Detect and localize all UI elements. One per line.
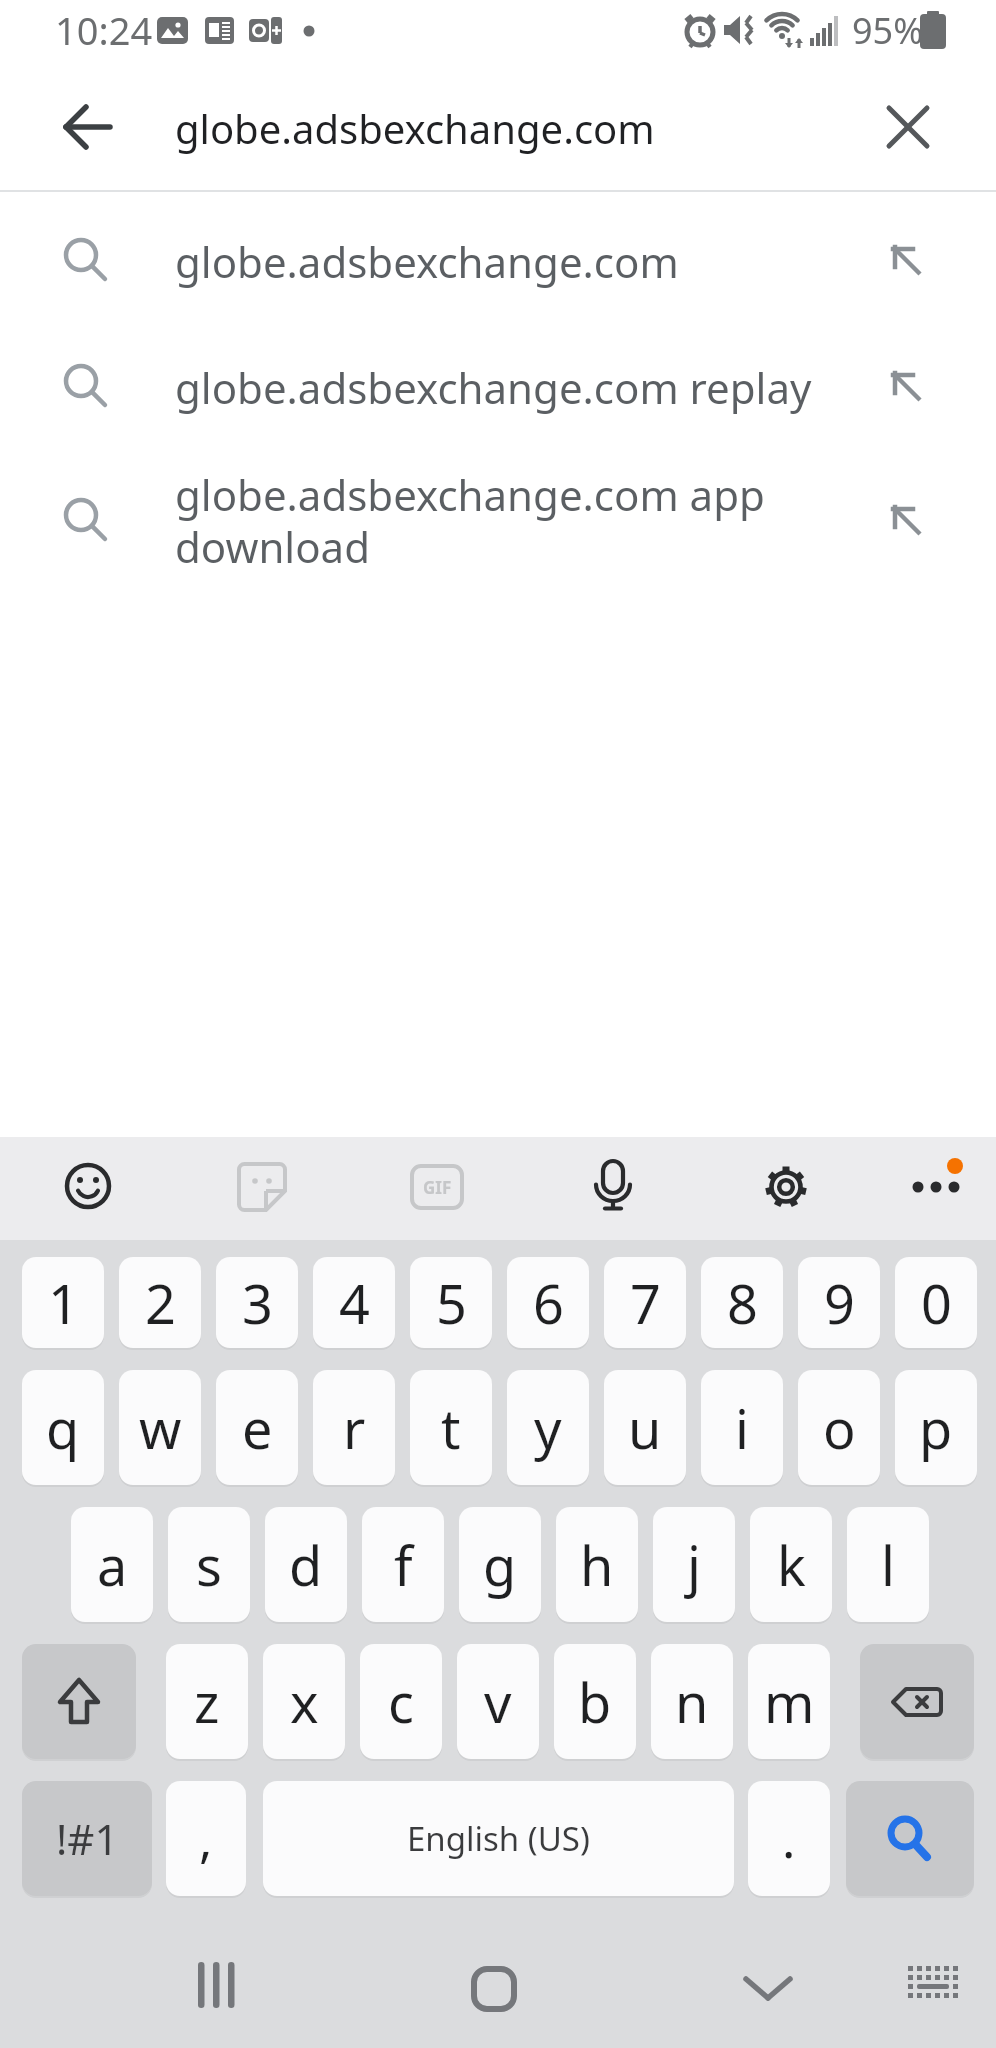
staticText: u xyxy=(628,1391,662,1465)
staticText: g xyxy=(483,1528,517,1602)
staticText: p xyxy=(919,1391,953,1465)
staticText: globe.adsbexchange.com xyxy=(175,233,679,290)
staticText: w xyxy=(139,1391,182,1465)
button[interactable] xyxy=(860,1644,974,1759)
button[interactable] xyxy=(583,1155,643,1215)
staticText: globe.adsbexchange.com replay xyxy=(175,359,812,416)
staticText: t xyxy=(441,1391,461,1465)
button[interactable] xyxy=(188,1956,248,2016)
button[interactable]: i xyxy=(701,1370,783,1485)
button[interactable]: x xyxy=(263,1644,345,1759)
button[interactable]: p xyxy=(895,1370,977,1485)
button[interactable]: z xyxy=(166,1644,248,1759)
button[interactable]: l xyxy=(847,1507,929,1622)
button[interactable]: g xyxy=(459,1507,541,1622)
button[interactable]: w xyxy=(119,1370,201,1485)
button[interactable]: a xyxy=(71,1507,153,1622)
button[interactable] xyxy=(897,1157,977,1217)
button[interactable]: d xyxy=(265,1507,347,1622)
button[interactable]: o xyxy=(798,1370,880,1485)
button[interactable]: 8 xyxy=(701,1257,783,1348)
button[interactable]: , xyxy=(166,1781,246,1896)
staticText: 9 xyxy=(824,1266,855,1340)
button[interactable] xyxy=(22,1644,136,1759)
button[interactable]: 4 xyxy=(313,1257,395,1348)
staticText: r xyxy=(343,1391,366,1465)
staticText: v xyxy=(484,1665,512,1739)
button[interactable]: m xyxy=(748,1644,830,1759)
staticText: 3 xyxy=(242,1266,273,1340)
button[interactable]: GIF xyxy=(407,1157,467,1217)
staticText: h xyxy=(580,1528,614,1602)
button[interactable] xyxy=(846,1781,974,1896)
staticText: k xyxy=(777,1528,806,1602)
staticText: c xyxy=(388,1665,414,1739)
button[interactable]: !#1 xyxy=(22,1781,152,1896)
staticText: d xyxy=(289,1528,323,1602)
button[interactable]: h xyxy=(556,1507,638,1622)
staticText: , xyxy=(199,1805,213,1873)
button[interactable]: f xyxy=(362,1507,444,1622)
button[interactable] xyxy=(57,1156,117,1216)
button[interactable]: q xyxy=(22,1370,104,1485)
staticText: b xyxy=(578,1665,612,1739)
button[interactable]: r xyxy=(313,1370,395,1485)
staticText: a xyxy=(97,1528,128,1602)
staticText: m xyxy=(764,1665,815,1739)
staticText: o xyxy=(823,1391,856,1465)
staticText: 4 xyxy=(339,1266,370,1340)
button[interactable]: 2 xyxy=(119,1257,201,1348)
button[interactable]: 0 xyxy=(895,1257,977,1348)
button[interactable]: j xyxy=(653,1507,735,1622)
staticText: English (US) xyxy=(407,1816,590,1861)
button[interactable]: s xyxy=(168,1507,250,1622)
button[interactable] xyxy=(0,440,996,600)
button[interactable]: n xyxy=(651,1644,733,1759)
staticText: s xyxy=(196,1528,222,1602)
staticText: f xyxy=(394,1528,413,1602)
button[interactable] xyxy=(464,1958,524,2018)
button[interactable] xyxy=(878,97,938,157)
button[interactable]: y xyxy=(507,1370,589,1485)
staticText: q xyxy=(46,1391,80,1465)
staticText: 0 xyxy=(921,1266,952,1340)
button[interactable]: 9 xyxy=(798,1257,880,1348)
button[interactable] xyxy=(903,1960,963,2010)
button[interactable]: 7 xyxy=(604,1257,686,1348)
staticText: z xyxy=(194,1665,220,1739)
staticText: 6 xyxy=(533,1266,564,1340)
button[interactable]: u xyxy=(604,1370,686,1485)
staticText: 7 xyxy=(630,1266,661,1340)
staticText: y xyxy=(534,1391,562,1465)
button[interactable]: e xyxy=(216,1370,298,1485)
button[interactable] xyxy=(756,1157,816,1217)
staticText: 10:24 xyxy=(55,4,153,56)
staticText: 8 xyxy=(727,1266,758,1340)
staticText: e xyxy=(242,1391,273,1465)
staticText: globe.adsbexchange.com app xyxy=(175,466,765,523)
button[interactable] xyxy=(0,206,996,316)
button[interactable] xyxy=(56,95,120,159)
button[interactable]: c xyxy=(360,1644,442,1759)
staticText: 95% xyxy=(852,6,924,55)
staticText: GIF xyxy=(423,1176,452,1199)
staticText: n xyxy=(675,1665,709,1739)
button[interactable]: 5 xyxy=(410,1257,492,1348)
button[interactable]: 1 xyxy=(22,1257,104,1348)
button[interactable] xyxy=(740,1955,800,2015)
button[interactable]: t xyxy=(410,1370,492,1485)
button[interactable]: English (US) xyxy=(263,1781,734,1896)
button[interactable]: 3 xyxy=(216,1257,298,1348)
staticText: globe.adsbexchange.com xyxy=(175,101,655,155)
button[interactable]: 6 xyxy=(507,1257,589,1348)
button[interactable]: b xyxy=(554,1644,636,1759)
button[interactable] xyxy=(0,332,996,442)
staticText: 2 xyxy=(145,1266,176,1340)
staticText: download xyxy=(175,518,371,575)
staticText: !#1 xyxy=(56,1810,119,1867)
staticText: l xyxy=(881,1528,895,1602)
button[interactable] xyxy=(232,1157,292,1217)
button[interactable]: . xyxy=(748,1781,830,1896)
button[interactable]: v xyxy=(457,1644,539,1759)
button[interactable]: k xyxy=(750,1507,832,1622)
